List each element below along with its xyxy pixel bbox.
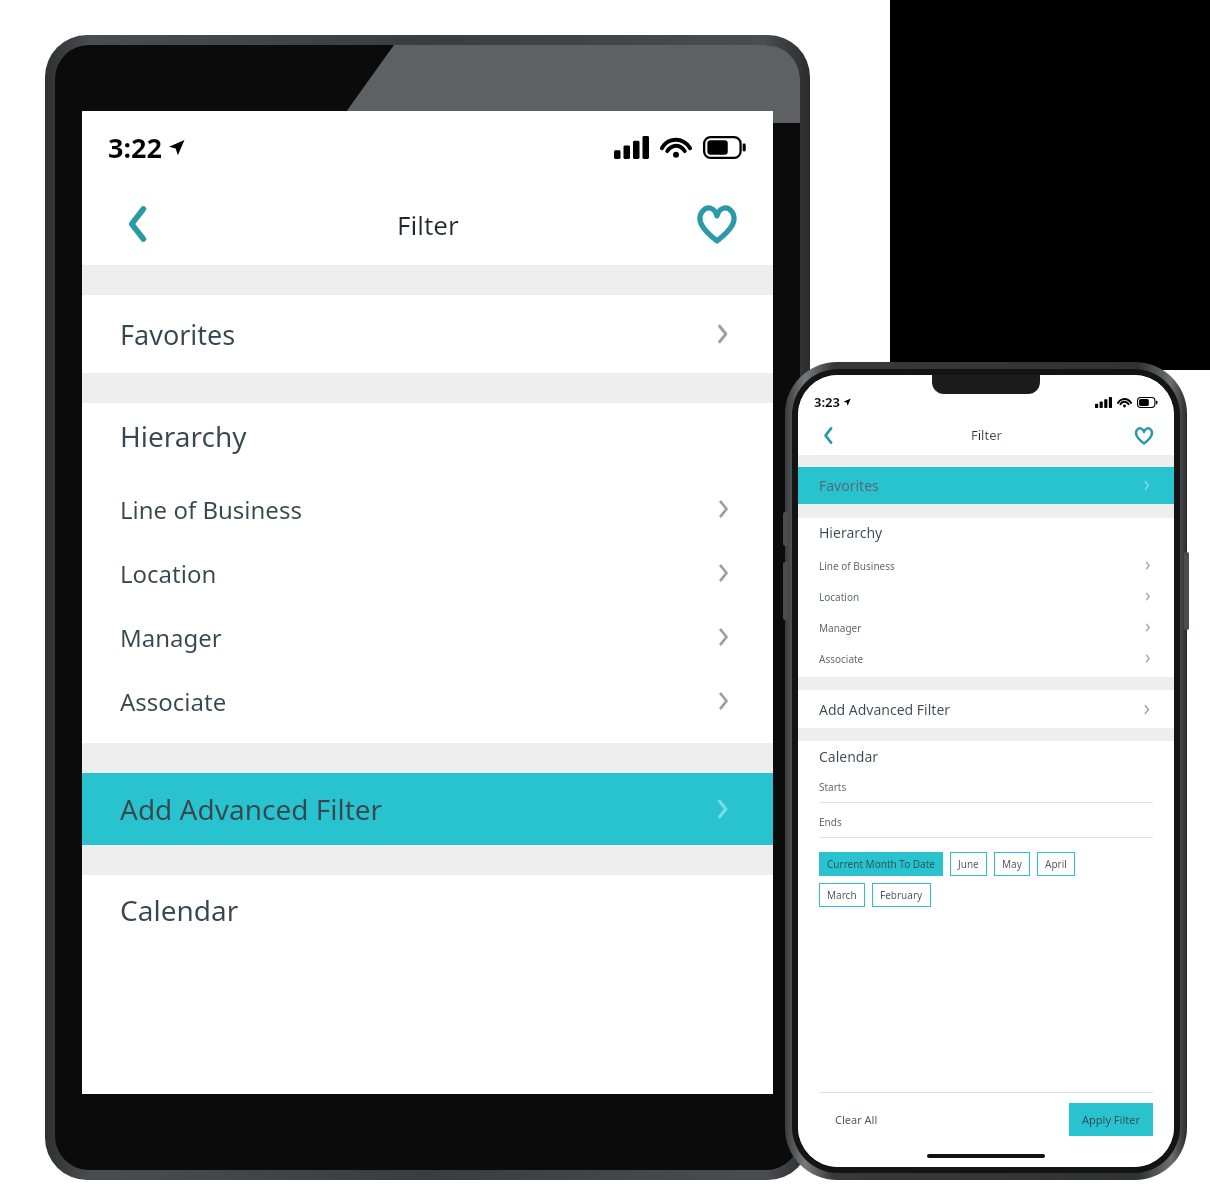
staticText: Associate <box>120 685 711 718</box>
staticText: Favorites <box>120 316 709 353</box>
button[interactable]: April <box>1037 852 1075 876</box>
button[interactable]: Location <box>82 541 773 605</box>
staticText: Associate <box>819 652 1142 666</box>
button[interactable]: Favorite <box>1127 419 1160 452</box>
button[interactable]: Favorite <box>689 196 745 252</box>
staticText: Hierarchy <box>819 523 883 542</box>
button[interactable]: Line of Business <box>82 477 773 541</box>
staticText: Favorites <box>819 476 1140 495</box>
staticText: Line of Business <box>120 493 711 526</box>
button[interactable]: Current Month To Date <box>819 852 943 876</box>
staticText: June <box>958 857 979 871</box>
staticText: February <box>880 888 923 902</box>
staticText: Filter <box>397 207 459 242</box>
button[interactable]: Manager <box>82 605 773 669</box>
button[interactable]: Associate <box>798 643 1174 674</box>
button[interactable]: Apply Filter <box>1069 1103 1153 1136</box>
staticText: Calendar <box>120 891 239 929</box>
staticText: Calendar <box>819 747 879 766</box>
staticText: Manager <box>819 621 1142 635</box>
staticText: May <box>1002 857 1022 871</box>
button[interactable]: Favorites <box>82 295 773 373</box>
staticText: Manager <box>120 621 711 654</box>
button[interactable]: Line of Business <box>798 550 1174 581</box>
staticText: Starts <box>819 780 847 794</box>
button[interactable]: Add Advanced Filter <box>798 690 1174 728</box>
button[interactable]: Clear All <box>819 1104 894 1135</box>
button[interactable]: Location <box>798 581 1174 612</box>
button[interactable]: Manager <box>798 612 1174 643</box>
staticText: Hierarchy <box>120 417 247 455</box>
button[interactable]: February <box>872 883 931 907</box>
button[interactable]: Back <box>110 196 166 252</box>
button[interactable]: June <box>950 852 987 876</box>
staticText: Add Advanced Filter <box>819 700 1140 719</box>
staticText: Location <box>819 590 1142 604</box>
staticText: Clear All <box>835 1112 878 1127</box>
button[interactable]: March <box>819 883 865 907</box>
staticText: Ends <box>819 815 842 829</box>
staticText: Current Month To Date <box>827 857 935 871</box>
staticText: 3:23 <box>814 393 840 411</box>
button[interactable]: Back <box>812 419 845 452</box>
staticText: March <box>827 888 857 902</box>
staticText: Add Advanced Filter <box>120 790 709 828</box>
staticText: Filter <box>971 426 1002 444</box>
staticText: Location <box>120 557 711 590</box>
staticText: Apply Filter <box>1082 1112 1140 1127</box>
staticText: April <box>1045 857 1067 871</box>
staticText: 3:22 <box>108 129 162 166</box>
button[interactable]: Associate <box>82 669 773 733</box>
button[interactable]: Favorites <box>798 467 1174 504</box>
button[interactable]: May <box>994 852 1030 876</box>
button[interactable]: Add Advanced Filter <box>82 773 773 845</box>
staticText: Line of Business <box>819 559 1142 573</box>
